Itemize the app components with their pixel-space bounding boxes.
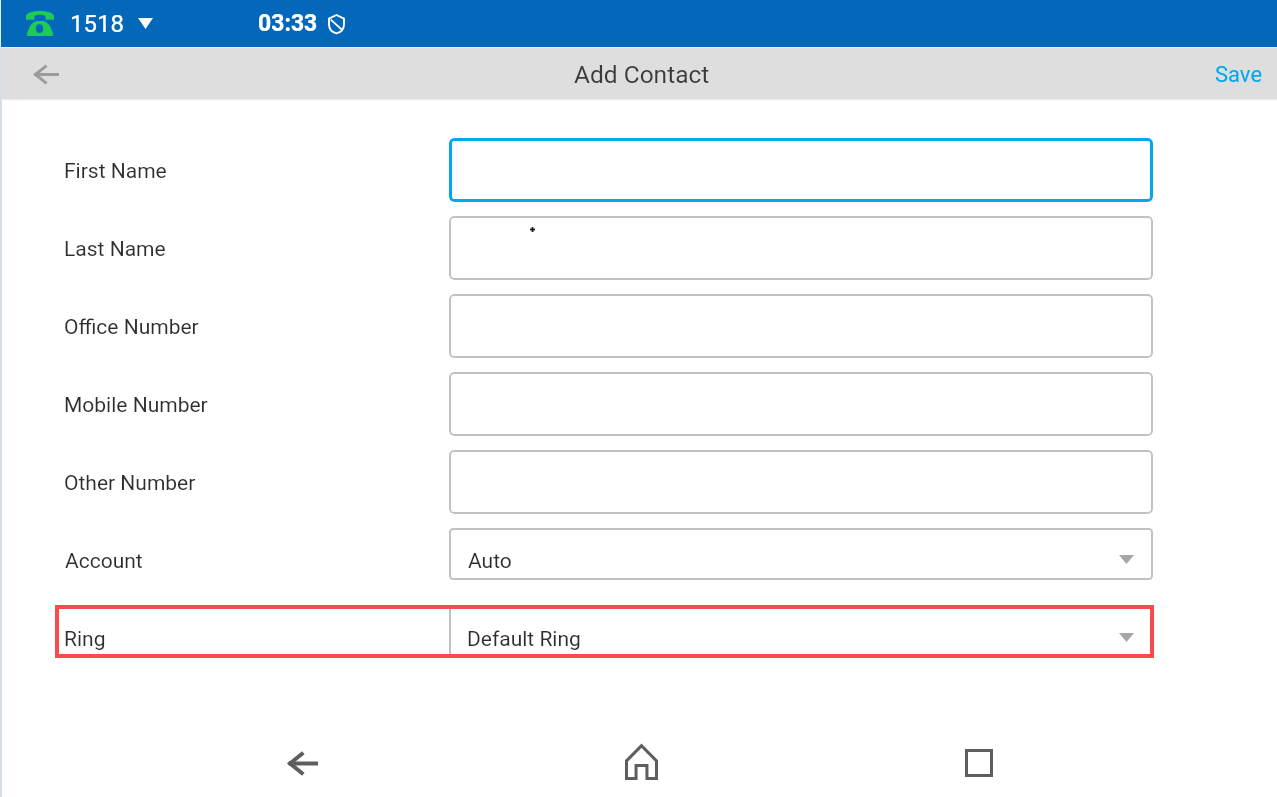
staticText: Auto: [468, 549, 512, 574]
button[interactable]: Ring: [55, 605, 1154, 658]
staticText: 03:33: [258, 10, 318, 37]
staticText: Add Contact: [574, 60, 710, 89]
button[interactable]: Save: [1201, 47, 1277, 99]
staticText: Ring: [64, 627, 106, 652]
button[interactable]: Account: [0, 528, 1277, 580]
staticText: Account: [65, 549, 143, 574]
button[interactable]: Mobile Number: [0, 372, 1277, 436]
button[interactable]: First Name: [0, 138, 1277, 202]
button[interactable]: Navigate up: [21, 49, 71, 99]
button[interactable]: Other Number: [0, 450, 1277, 514]
button[interactable]: Last Name: [0, 216, 1277, 280]
staticText: First Name: [64, 159, 167, 184]
staticText: Office Number: [64, 315, 199, 340]
staticText: Last Name: [64, 237, 166, 262]
button[interactable]: Office Number: [0, 294, 1277, 358]
button[interactable]: Back: [274, 739, 332, 787]
staticText: Save: [1215, 62, 1263, 88]
staticText: 1518: [70, 10, 124, 38]
staticText: Mobile Number: [64, 393, 208, 418]
button[interactable]: Recent apps: [950, 738, 1008, 788]
button[interactable]: Home: [612, 737, 670, 787]
staticText: Other Number: [64, 471, 196, 496]
staticText: Default Ring: [467, 627, 581, 652]
